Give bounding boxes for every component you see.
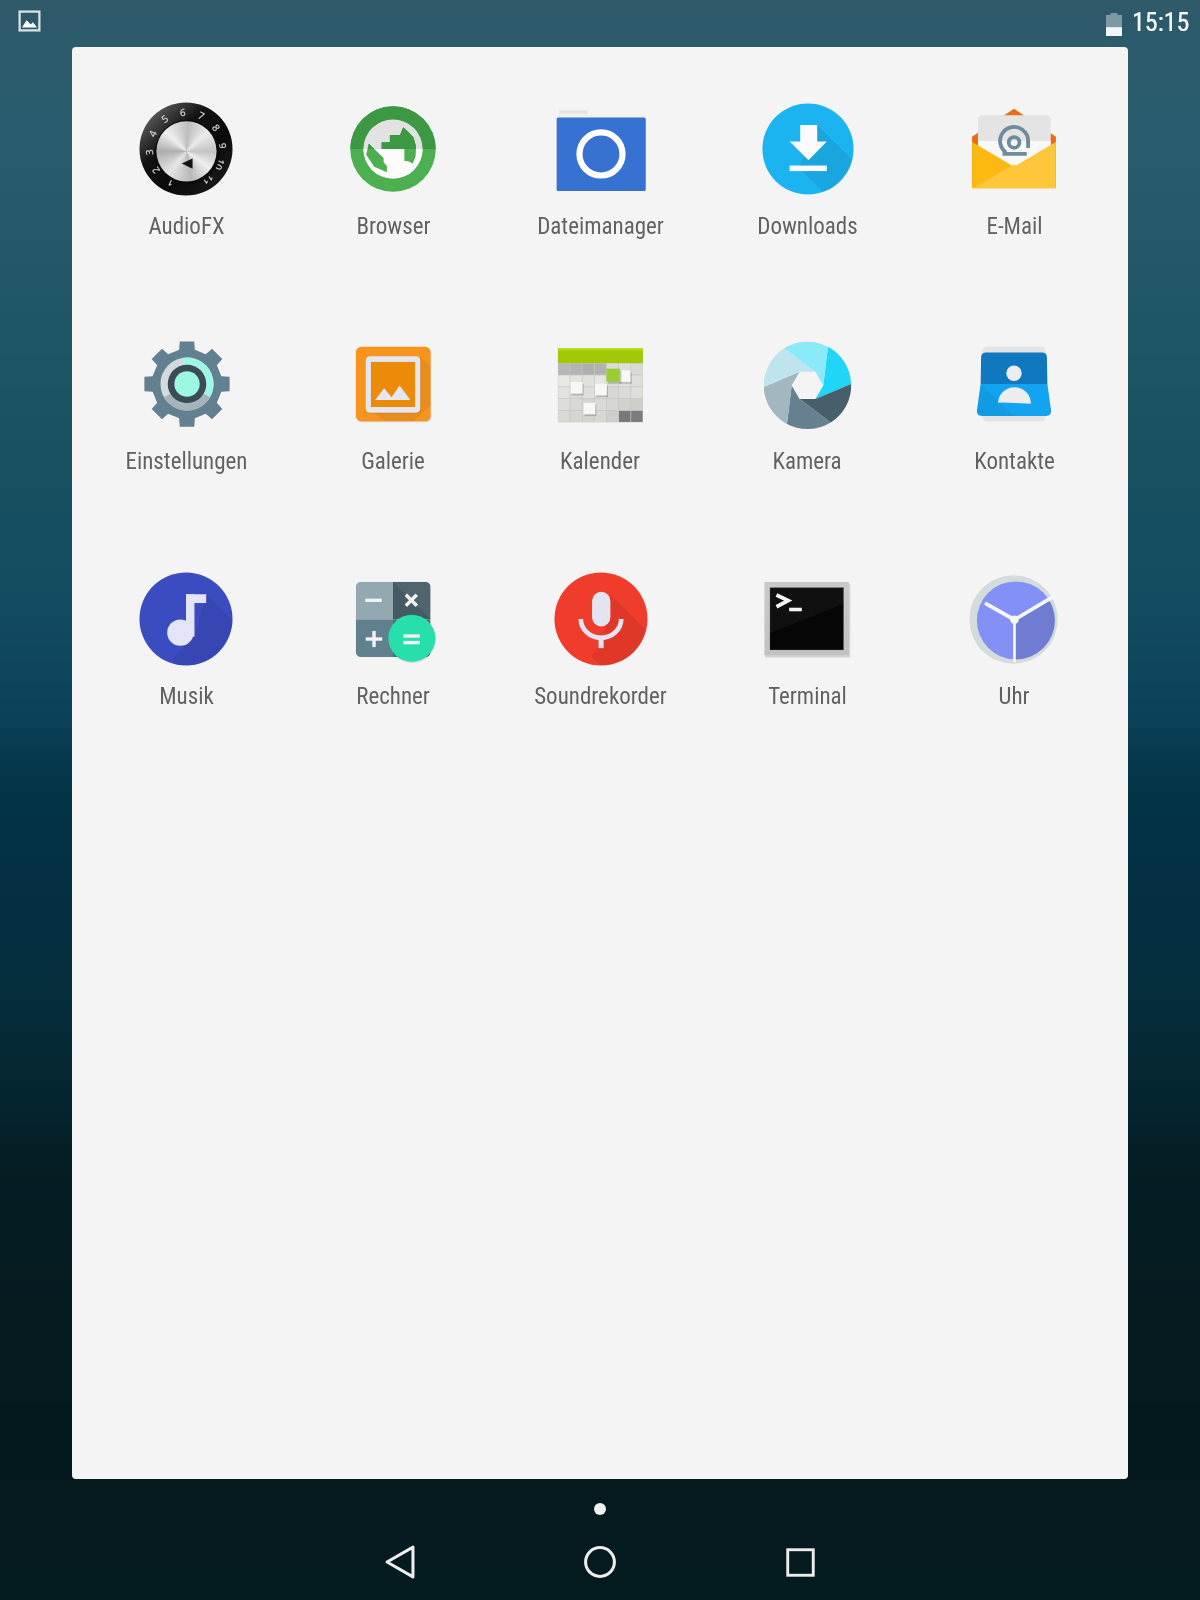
button[interactable]: Uhr [914, 572, 1114, 722]
button[interactable]: Rechner [293, 572, 493, 722]
button[interactable]: Dateimanager [500, 102, 700, 252]
staticText: Einstellungen [125, 448, 248, 475]
staticText: Browser [356, 213, 431, 240]
staticText: Kontakte [974, 448, 1055, 475]
staticText: Downloads [757, 213, 858, 240]
button[interactable]: Downloads [707, 102, 907, 252]
staticText: Soundrekorder [534, 683, 667, 710]
staticText: Kamera [772, 448, 842, 475]
button[interactable]: AudioFX [86, 102, 286, 252]
button[interactable]: Kontakte [914, 337, 1114, 487]
button[interactable]: Kalender [500, 337, 700, 487]
staticText: Rechner [356, 683, 430, 710]
button[interactable]: Galerie [293, 337, 493, 487]
staticText: Uhr [998, 683, 1030, 710]
button[interactable]: Browser [293, 102, 493, 252]
button[interactable]: Kamera [707, 337, 907, 487]
button[interactable]: Soundrekorder [500, 572, 700, 722]
button[interactable]: Einstellungen [86, 337, 286, 487]
button[interactable]: Recents [730, 1524, 870, 1600]
staticText: Musik [159, 683, 214, 710]
staticText: Terminal [768, 683, 847, 710]
button[interactable]: Wallpaper [9, 0, 50, 41]
staticText: 15:15 [1132, 7, 1190, 37]
staticText: AudioFX [148, 213, 225, 240]
button[interactable]: E-Mail [914, 102, 1114, 252]
button[interactable]: Musik [86, 572, 286, 722]
staticText: Kalender [560, 448, 640, 475]
button[interactable]: Back [330, 1524, 470, 1600]
button[interactable]: Home [530, 1524, 670, 1600]
staticText: Galerie [361, 448, 425, 475]
staticText: E-Mail [986, 213, 1043, 240]
staticText: Dateimanager [537, 213, 664, 240]
button[interactable]: Terminal [707, 572, 907, 722]
